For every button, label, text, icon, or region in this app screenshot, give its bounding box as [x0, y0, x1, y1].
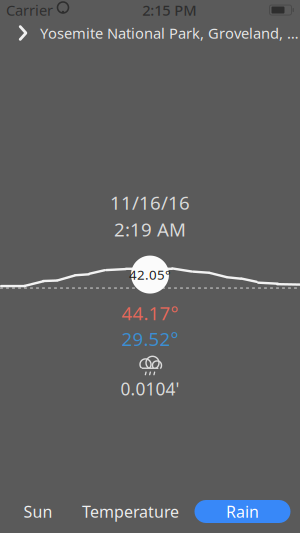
- button[interactable]: Back: [6, 19, 40, 47]
- staticText: Temperature: [82, 501, 179, 522]
- staticText: 2:19 AM: [114, 217, 186, 242]
- staticText: Carrier: [6, 0, 53, 20]
- staticText: Rain: [226, 501, 259, 522]
- staticText: 42.05°: [129, 266, 171, 283]
- button[interactable]: Rain: [194, 500, 290, 523]
- staticText: 29.52°: [121, 326, 178, 351]
- staticText: 0.0104': [120, 377, 179, 400]
- button[interactable]: Sun: [9, 495, 66, 528]
- button[interactable]: Temperature: [72, 495, 189, 528]
- staticText: 11/16/16: [110, 190, 190, 215]
- staticText: Sun: [23, 501, 52, 522]
- staticText: Yosemite National Park, Groveland, CA Un…: [40, 23, 300, 43]
- staticText: 2:15 PM: [142, 0, 196, 20]
- staticText: 44.17°: [121, 301, 178, 325]
